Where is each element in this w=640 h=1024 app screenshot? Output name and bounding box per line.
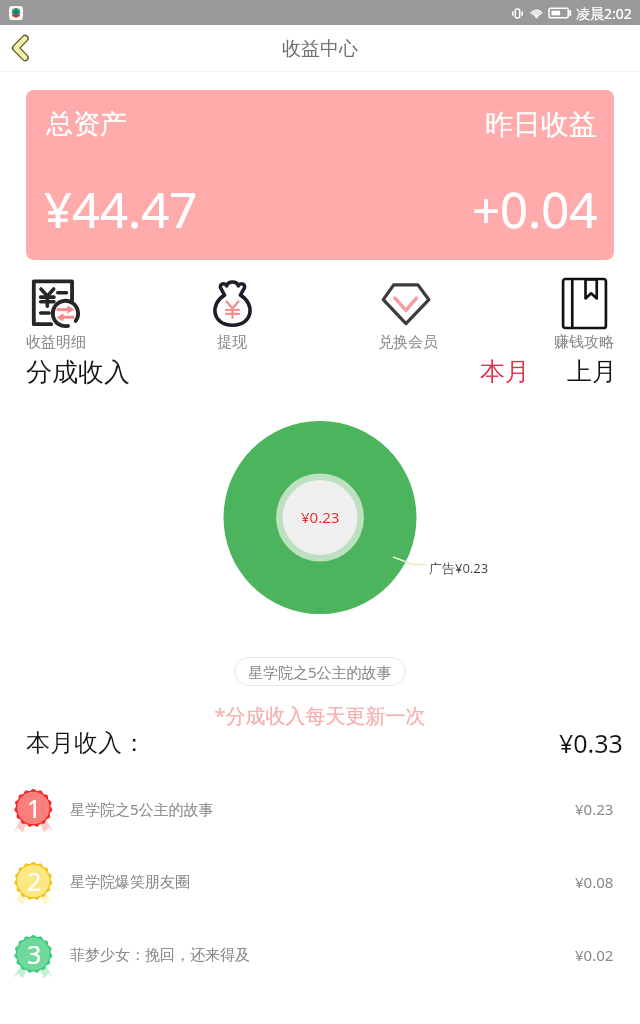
button[interactable]: 2 [0, 859, 640, 905]
button[interactable]: 提现 [188, 278, 276, 352]
button[interactable]: 本月 [480, 356, 530, 386]
button[interactable]: 兑换会员 [364, 278, 452, 352]
staticText: 星学院爆笑朋友圈 [70, 873, 190, 892]
staticText: ¥44.47 [44, 176, 198, 243]
staticText: 昨日收益 [485, 107, 597, 142]
staticText: 本月收入： [26, 728, 146, 758]
button[interactable]: Back [0, 25, 46, 71]
staticText: 分成收入 [26, 356, 130, 386]
staticText: 收益中心 [282, 37, 358, 61]
button[interactable]: 1 [0, 786, 640, 832]
staticText: 提现 [217, 333, 247, 352]
staticText: 凌晨2:02 [576, 4, 632, 23]
button[interactable]: 收益明细 [12, 278, 100, 352]
staticText: 2 [27, 864, 42, 898]
staticText: 菲梦少女：挽回，还来得及 [70, 946, 250, 965]
button[interactable]: 星学院之5公主的故事 [234, 657, 406, 686]
staticText: +0.04 [472, 176, 598, 243]
staticText: 总资产 [46, 107, 127, 141]
staticText: 星学院之5公主的故事 [70, 799, 214, 819]
button[interactable]: 上月 [567, 356, 617, 386]
staticText: ¥0.23 [575, 799, 614, 819]
staticText: 本月 [480, 356, 530, 386]
staticText: ¥0.02 [575, 945, 614, 965]
staticText: 3 [27, 937, 42, 971]
staticText: 收益明细 [26, 333, 86, 352]
staticText: *分成收入每天更新一次 [0, 702, 640, 729]
staticText: 广告¥0.23 [429, 559, 489, 577]
button[interactable]: 3 [0, 932, 640, 978]
staticText: ¥0.08 [575, 872, 614, 892]
staticText: 上月 [567, 356, 617, 386]
button[interactable]: 赚钱攻略 [540, 278, 628, 352]
staticText: ¥0.23 [301, 507, 340, 527]
staticText: 星学院之5公主的故事 [248, 662, 392, 682]
staticText: 赚钱攻略 [554, 333, 614, 352]
staticText: ¥0.33 [559, 726, 623, 760]
button[interactable]: 总资产 [26, 90, 614, 260]
staticText: 1 [27, 791, 42, 825]
staticText: 兑换会员 [378, 333, 438, 352]
